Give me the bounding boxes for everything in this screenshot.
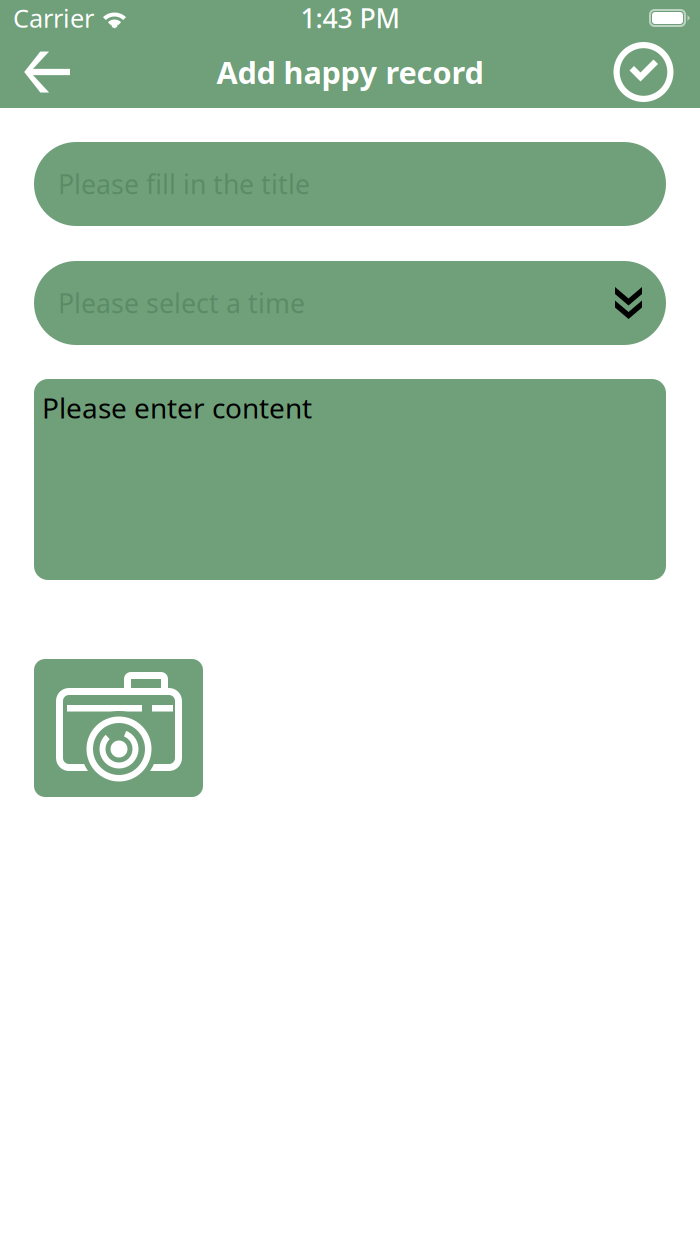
button[interactable]: Please select a time bbox=[34, 261, 666, 345]
staticText: 1:43 PM bbox=[300, 0, 399, 36]
button[interactable]: Please enter content bbox=[34, 379, 666, 580]
staticText: Please select a time bbox=[58, 285, 305, 321]
staticText: Please fill in the title bbox=[58, 166, 310, 202]
button[interactable]: Save bbox=[593, 36, 700, 108]
staticText: Carrier bbox=[13, 1, 94, 35]
staticText: Please enter content bbox=[42, 389, 312, 426]
staticText: Add happy record bbox=[216, 52, 483, 92]
button[interactable]: Add photo bbox=[34, 659, 203, 797]
button[interactable]: Please fill in the title bbox=[34, 142, 666, 226]
button[interactable]: Back bbox=[0, 36, 90, 108]
